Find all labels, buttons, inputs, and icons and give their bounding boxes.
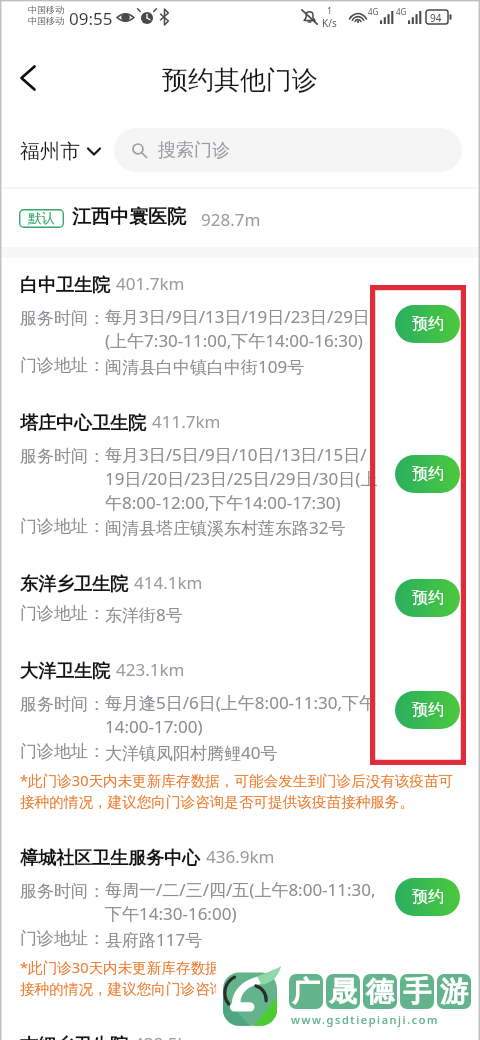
staticText: 门诊地址： <box>20 741 105 762</box>
button[interactable]: 默认 <box>0 189 480 247</box>
staticText: 423.1km <box>116 658 185 681</box>
staticText: *此门诊30天内未更新库存数据，可能会发生到门诊后没有该疫苗可 接种的情况，建议… <box>20 770 454 811</box>
staticText: 大洋镇凤阳村腾鲤40号 <box>105 741 278 764</box>
staticText: 4G <box>396 6 407 17</box>
button[interactable]: 预约 <box>395 579 460 617</box>
staticText: 塔庄中心卫生院 <box>20 412 146 435</box>
staticText: 门诊地址： <box>20 603 105 624</box>
staticText: 服务时间： <box>20 881 105 902</box>
staticText: 411.7km <box>152 410 221 433</box>
staticText: 436.9km <box>206 845 275 868</box>
staticText: 服务时间： <box>20 446 105 467</box>
staticText: 门诊地址： <box>20 516 105 537</box>
staticText: 晟 <box>329 974 357 1009</box>
staticText: 中国移动 <box>28 15 64 26</box>
staticText: 江西中寰医院 <box>72 205 186 229</box>
staticText: 中国移动 <box>28 4 64 15</box>
staticText: 东洋乡卫生院 <box>20 573 128 596</box>
staticText: 预约 <box>412 464 444 484</box>
staticText: 福州市 <box>20 139 80 164</box>
staticText: 预约 <box>412 700 444 720</box>
staticText: 414.1km <box>134 571 203 594</box>
staticText: 1 <box>327 4 333 16</box>
button[interactable]: 搜索门诊 <box>114 128 462 172</box>
button[interactable]: 预约 <box>395 455 460 493</box>
staticText: 928.7m <box>201 208 261 231</box>
button[interactable]: 预约 <box>395 878 460 916</box>
staticText: 游 <box>440 974 468 1009</box>
staticText: 闽清县塔庄镇溪东村莲东路32号 <box>105 516 346 539</box>
staticText: 401.7km <box>116 272 185 295</box>
button[interactable]: 预约 <box>395 691 460 729</box>
staticText: 广 <box>292 974 320 1009</box>
staticText: 县府路117号 <box>105 928 203 951</box>
staticText: *此门诊30天内未更新库存数据，可能会发生到门诊后没有该疫苗可 接种的情况，建议… <box>20 957 454 998</box>
staticText: 服务时间： <box>20 308 105 329</box>
button[interactable]: Back <box>5 56 49 100</box>
staticText: 每月逢5日/6日(上午8:00-11:30,下午 14:00-17:00) <box>105 691 377 738</box>
staticText: 94 <box>430 11 442 25</box>
staticText: 白中卫生院 <box>20 274 110 297</box>
staticText: 4G <box>368 6 379 17</box>
staticText: 预约 <box>412 314 444 334</box>
staticText: 东洋街8号 <box>105 603 183 626</box>
button[interactable]: 樟城社区卫生服务中心 <box>0 831 480 1018</box>
staticText: 预约 <box>412 588 444 608</box>
staticText: 搜索门诊 <box>158 139 230 162</box>
staticText: 每月3日/9日/13日/19日/23日/29日 (上午7:30-11:00,下午… <box>105 305 370 352</box>
staticText: 樟城社区卫生服务中心 <box>20 847 200 870</box>
staticText: 门诊地址： <box>20 355 105 376</box>
button[interactable]: 东洋乡卫生院 <box>0 557 480 644</box>
staticText: 服务时间： <box>20 694 105 715</box>
staticText: 438.5km <box>134 1032 203 1040</box>
button[interactable]: 大洋卫生院 <box>0 644 480 831</box>
staticText: 大洋卫生院 <box>20 660 110 683</box>
staticText: www.gsdtiepianji.com <box>291 1012 440 1027</box>
staticText: 门诊地址： <box>20 928 105 949</box>
staticText: 吉细乡卫生院 <box>20 1034 128 1040</box>
staticText: K/s <box>322 16 337 30</box>
staticText: 默认 <box>28 210 55 227</box>
button[interactable]: 吉细乡卫生院 <box>0 1018 480 1040</box>
staticText: 每周一/二/三/四/五(上午8:00-11:30, 下午14:30-16:00) <box>105 878 376 925</box>
staticText: 每月3日/5日/9日/10日/13日/15日/ 19日/20日/23日/25日/… <box>105 443 378 514</box>
staticText: 德 <box>366 974 394 1009</box>
staticText: 闽清县白中镇白中街109号 <box>105 355 305 378</box>
button[interactable]: 预约 <box>395 305 460 343</box>
staticText: 预约其他门诊 <box>162 64 318 97</box>
staticText: 手 <box>403 974 431 1009</box>
button[interactable]: 福州市 <box>16 135 104 168</box>
staticText: 预约 <box>412 887 444 907</box>
staticText: 09:55 <box>69 7 113 30</box>
button[interactable]: 塔庄中心卫生院 <box>0 396 480 557</box>
button[interactable]: 白中卫生院 <box>0 258 480 396</box>
